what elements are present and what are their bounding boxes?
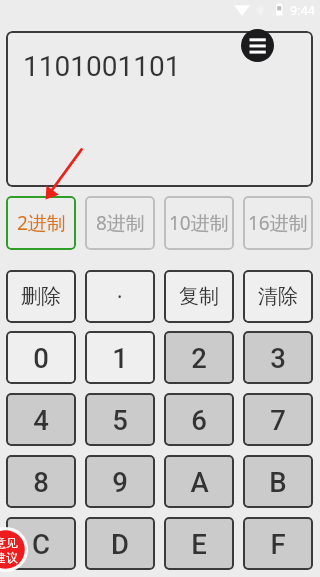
button[interactable]: 1 — [85, 331, 155, 384]
staticText: D — [111, 528, 129, 560]
button[interactable]: 10进制 — [164, 196, 234, 250]
button[interactable]: F — [243, 517, 313, 570]
staticText: A — [190, 466, 209, 498]
button[interactable]: E — [164, 517, 234, 570]
staticText: 16进制 — [248, 210, 308, 236]
button[interactable]: 复制 — [164, 270, 234, 323]
button[interactable]: · — [85, 270, 155, 323]
button[interactable]: 0 — [6, 331, 76, 384]
staticText: 删除 — [21, 284, 61, 309]
button[interactable]: D — [85, 517, 155, 570]
button[interactable]: 意见 — [0, 524, 31, 575]
staticText: 复制 — [179, 284, 219, 309]
staticText: 10进制 — [169, 210, 229, 236]
staticText: B — [269, 466, 287, 498]
staticText: 9 — [112, 466, 128, 498]
staticText: 1 — [112, 342, 128, 374]
button[interactable]: 清除 — [243, 270, 313, 323]
button[interactable]: 16进制 — [243, 196, 313, 250]
button[interactable]: 2 — [164, 331, 234, 384]
button[interactable]: A — [164, 455, 234, 508]
button[interactable]: 8 — [6, 455, 76, 508]
staticText: 4 — [33, 404, 49, 436]
staticText: C — [32, 528, 50, 560]
button[interactable]: 7 — [243, 393, 313, 446]
staticText: 1101001101 — [23, 50, 181, 83]
button[interactable]: 8进制 — [85, 196, 155, 250]
button[interactable]: Menu — [241, 29, 274, 62]
button[interactable]: B — [243, 455, 313, 508]
staticText: F — [270, 528, 286, 560]
staticText: 清除 — [258, 284, 298, 309]
staticText: 6 — [191, 404, 207, 436]
button[interactable]: 3 — [243, 331, 313, 384]
staticText: 2 — [191, 342, 207, 374]
button[interactable]: 2进制 — [6, 196, 76, 250]
staticText: · — [117, 283, 123, 310]
staticText: E — [191, 528, 207, 560]
staticText: 8进制 — [96, 210, 145, 236]
button[interactable]: 删除 — [6, 270, 76, 323]
staticText: 9:44 — [290, 3, 316, 18]
button[interactable]: 4 — [6, 393, 76, 446]
button[interactable]: 5 — [85, 393, 155, 446]
staticText: 5 — [112, 404, 128, 436]
staticText: 意见 — [0, 535, 18, 550]
button[interactable]: C — [6, 517, 76, 570]
staticText: 建议 — [0, 550, 18, 565]
staticText: 2进制 — [17, 210, 66, 236]
button[interactable]: 9 — [85, 455, 155, 508]
staticText: 7 — [270, 404, 286, 436]
staticText: 8 — [33, 466, 49, 498]
staticText: 3 — [270, 342, 286, 374]
button[interactable]: 6 — [164, 393, 234, 446]
staticText: 0 — [33, 342, 49, 374]
